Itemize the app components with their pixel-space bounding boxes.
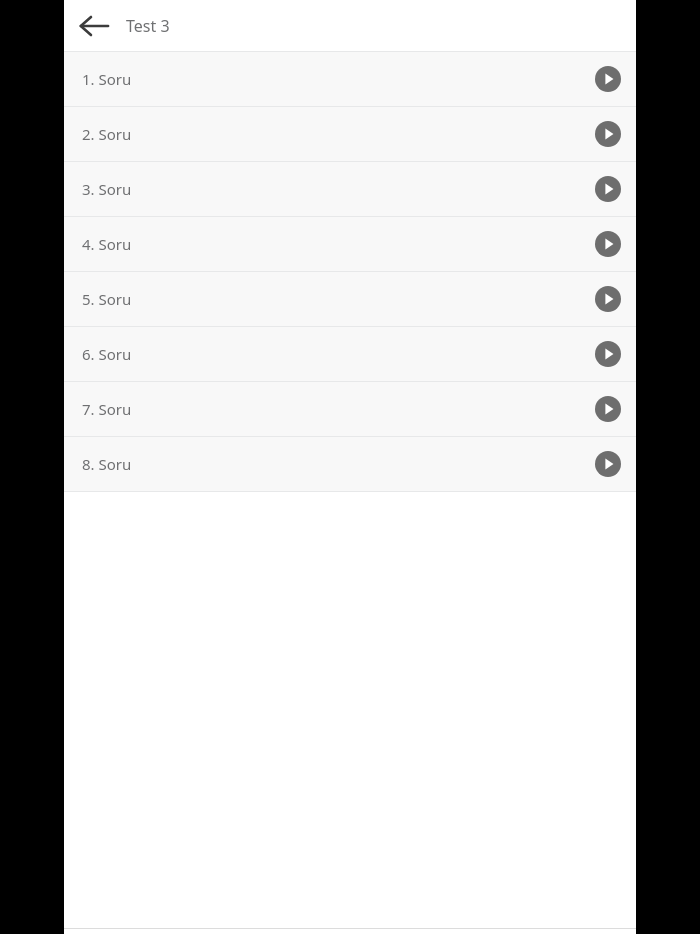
button[interactable]: 3. Soru xyxy=(64,162,636,216)
button[interactable]: 8. Soru xyxy=(64,437,636,491)
button[interactable]: Play question 3 xyxy=(595,176,621,202)
staticText: 8. Soru xyxy=(82,454,132,474)
button[interactable]: 7. Soru xyxy=(64,382,636,436)
button[interactable]: Back xyxy=(70,2,118,50)
staticText: 1. Soru xyxy=(82,69,132,89)
button[interactable]: Play question 7 xyxy=(595,396,621,422)
button[interactable]: Play question 2 xyxy=(595,121,621,147)
button[interactable]: Play question 4 xyxy=(595,231,621,257)
staticText: 6. Soru xyxy=(82,344,132,364)
button[interactable]: Play question 8 xyxy=(595,451,621,477)
button[interactable]: Play question 5 xyxy=(595,286,621,312)
button[interactable]: 6. Soru xyxy=(64,327,636,381)
button[interactable]: 2. Soru xyxy=(64,107,636,161)
staticText: 3. Soru xyxy=(82,179,132,199)
button[interactable]: 1. Soru xyxy=(64,52,636,106)
staticText: 2. Soru xyxy=(82,124,132,144)
staticText: 7. Soru xyxy=(82,399,132,419)
button[interactable]: Play question 6 xyxy=(595,341,621,367)
staticText: Test 3 xyxy=(126,15,170,37)
button[interactable]: Play question 1 xyxy=(595,66,621,92)
staticText: 4. Soru xyxy=(82,234,132,254)
staticText: 5. Soru xyxy=(82,289,132,309)
button[interactable]: 5. Soru xyxy=(64,272,636,326)
button[interactable]: 4. Soru xyxy=(64,217,636,271)
